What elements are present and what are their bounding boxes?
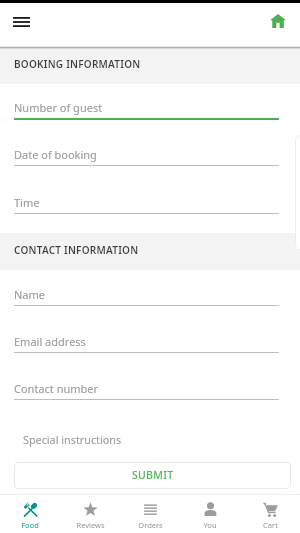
staticText: BOOKING INFORMATION: [14, 57, 141, 71]
button[interactable]: Date of booking: [14, 135, 279, 166]
button[interactable]: Home: [259, 2, 297, 40]
button[interactable]: Contact number: [14, 369, 279, 400]
button[interactable]: Email address: [14, 322, 279, 353]
staticText: Name: [14, 287, 46, 302]
button[interactable]: Cart: [240, 495, 300, 533]
staticText: Email address: [14, 334, 86, 349]
button[interactable]: SUBMIT: [14, 462, 291, 489]
button[interactable]: Name: [14, 275, 279, 306]
staticText: You: [203, 520, 217, 530]
button[interactable]: Food: [0, 495, 60, 533]
button[interactable]: Orders: [120, 495, 180, 533]
staticText: Special instructions: [23, 432, 122, 447]
staticText: Number of guest: [14, 100, 103, 115]
staticText: CONTACT INFORMATION: [14, 243, 139, 257]
staticText: Date of booking: [14, 147, 97, 162]
staticText: Food: [21, 520, 39, 530]
staticText: SUBMIT: [132, 468, 174, 482]
staticText: Cart: [263, 520, 278, 530]
staticText: Contact number: [14, 381, 99, 396]
button[interactable]: Time: [14, 183, 279, 214]
button[interactable]: Reviews: [60, 495, 120, 533]
staticText: Orders: [138, 520, 163, 530]
button[interactable]: Number of guest: [14, 88, 279, 119]
button[interactable]: You: [180, 495, 240, 533]
staticText: Time: [14, 195, 40, 210]
staticText: Reviews: [76, 520, 105, 530]
button[interactable]: Open navigation menu: [2, 3, 40, 41]
